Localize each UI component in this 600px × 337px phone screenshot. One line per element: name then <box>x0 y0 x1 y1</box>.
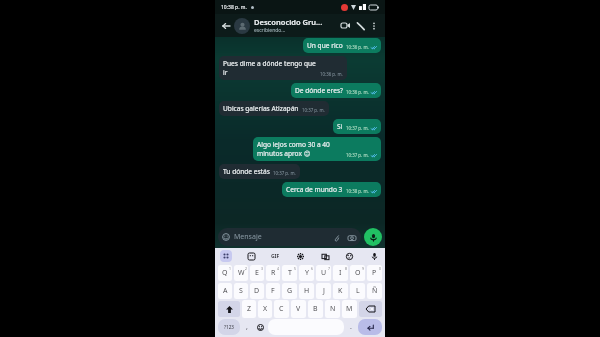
staticText: G <box>287 286 293 296</box>
staticText: 10:37 p. m. <box>346 152 369 158</box>
button[interactable]: S <box>234 283 248 299</box>
staticText: I <box>339 268 342 278</box>
button[interactable]: T <box>282 265 297 281</box>
staticText: 10:36 p. m. <box>346 89 369 95</box>
button[interactable]: M <box>342 300 357 318</box>
button[interactable]: Si <box>333 119 381 134</box>
staticText: L <box>356 286 360 296</box>
staticText: 7 <box>328 266 330 271</box>
button[interactable]: Shift <box>218 301 240 317</box>
button[interactable]: Backspace <box>359 301 382 317</box>
button[interactable]: GIF <box>269 250 281 262</box>
button[interactable]: Desconocido Gru... <box>254 17 338 34</box>
staticText: 3 <box>261 266 263 271</box>
button[interactable]: Enter <box>358 319 382 335</box>
button[interactable]: Period <box>345 319 357 335</box>
staticText: , <box>246 322 248 332</box>
button[interactable]: N <box>325 300 340 318</box>
button[interactable]: B <box>308 300 323 318</box>
staticText: Y <box>305 268 309 278</box>
button[interactable]: More options <box>368 20 380 32</box>
button[interactable]: Profile photo <box>234 18 250 34</box>
staticText: 10:36 p. m. <box>320 71 343 77</box>
button[interactable]: W <box>234 265 248 281</box>
button[interactable]: Y <box>299 265 314 281</box>
button[interactable]: Back <box>219 19 233 33</box>
button[interactable]: Tu dónde estás <box>219 164 300 179</box>
staticText: Algo lejos como 30 a 40 minutos aprox 😊 <box>257 140 343 158</box>
staticText: Un que rico <box>307 41 343 50</box>
button[interactable]: Ubicas galerías Atizapán <box>219 101 329 116</box>
button[interactable]: Voice call <box>353 18 368 33</box>
staticText: 10:36 p. m. <box>346 44 369 50</box>
staticText: D <box>254 286 260 296</box>
staticText: 4 <box>277 266 279 271</box>
staticText: 5 <box>294 266 296 271</box>
staticText: 8 <box>345 266 347 271</box>
staticText: P <box>372 268 377 278</box>
button[interactable]: Emoji <box>253 319 267 335</box>
staticText: H <box>304 286 310 296</box>
button[interactable]: Comma <box>241 319 253 335</box>
button[interactable]: Keyboard menu <box>220 250 232 262</box>
staticText: O <box>355 268 361 278</box>
button[interactable]: sticker <box>245 250 257 262</box>
staticText: 10:38 p. m. <box>346 188 369 194</box>
staticText: 9 <box>362 266 364 271</box>
button[interactable]: Video call <box>338 18 353 33</box>
staticText: Mensaje <box>234 232 331 242</box>
staticText: M <box>346 304 353 314</box>
button[interactable]: Algo lejos como 30 a 40 minutos aprox 😊 <box>253 137 381 161</box>
button[interactable]: V <box>291 300 306 318</box>
button[interactable]: theme <box>343 250 355 262</box>
button[interactable]: ?123 <box>218 319 240 335</box>
button[interactable]: R <box>266 265 280 281</box>
button[interactable]: Un que rico <box>303 38 381 53</box>
button[interactable]: U <box>316 265 331 281</box>
button[interactable]: Camera <box>346 232 357 243</box>
button[interactable]: De dónde eres? <box>291 83 381 98</box>
staticText: . <box>350 322 352 332</box>
staticText: W <box>238 268 245 278</box>
staticText: Ubicas galerías Atizapán <box>223 104 299 113</box>
staticText: Cerca de mundo 3 <box>286 185 343 194</box>
button[interactable]: Cerca de mundo 3 <box>282 182 381 197</box>
button[interactable]: P <box>367 265 382 281</box>
staticText: T <box>288 268 292 278</box>
button[interactable]: Attach <box>331 232 342 243</box>
button[interactable]: Mensaje <box>218 228 361 246</box>
staticText: De dónde eres? <box>295 86 343 95</box>
button[interactable]: C <box>274 300 289 318</box>
button[interactable]: Pues dime a dónde tengo que ir <box>219 56 347 80</box>
button[interactable]: F <box>266 283 280 299</box>
button[interactable]: A <box>218 283 232 299</box>
button[interactable]: L <box>350 283 365 299</box>
button[interactable]: Ñ <box>367 283 382 299</box>
staticText: 2 <box>245 266 247 271</box>
button[interactable]: X <box>258 300 272 318</box>
button[interactable]: I <box>333 265 348 281</box>
button[interactable]: Q <box>218 265 232 281</box>
button[interactable]: Voice message <box>364 228 382 246</box>
button[interactable]: settings <box>294 250 306 262</box>
button[interactable]: K <box>333 283 348 299</box>
button[interactable]: E <box>250 265 264 281</box>
staticText: GIF <box>271 253 280 260</box>
staticText: 10:37 p. m. <box>346 125 369 131</box>
button[interactable]: H <box>299 283 314 299</box>
button[interactable]: J <box>316 283 331 299</box>
button[interactable]: Space <box>268 319 344 335</box>
staticText: 10:37 p. m. <box>302 107 325 113</box>
staticText: R <box>271 268 276 278</box>
button[interactable]: D <box>250 283 264 299</box>
staticText: U <box>321 268 327 278</box>
button[interactable]: Z <box>242 300 256 318</box>
button[interactable]: mic <box>368 250 380 262</box>
button[interactable]: O <box>350 265 365 281</box>
staticText: C <box>279 304 284 314</box>
button[interactable]: G <box>282 283 297 299</box>
staticText: Tu dónde estás <box>223 167 270 176</box>
staticText: X <box>263 304 268 314</box>
button[interactable]: clip <box>319 250 331 262</box>
staticText: J <box>323 286 325 296</box>
